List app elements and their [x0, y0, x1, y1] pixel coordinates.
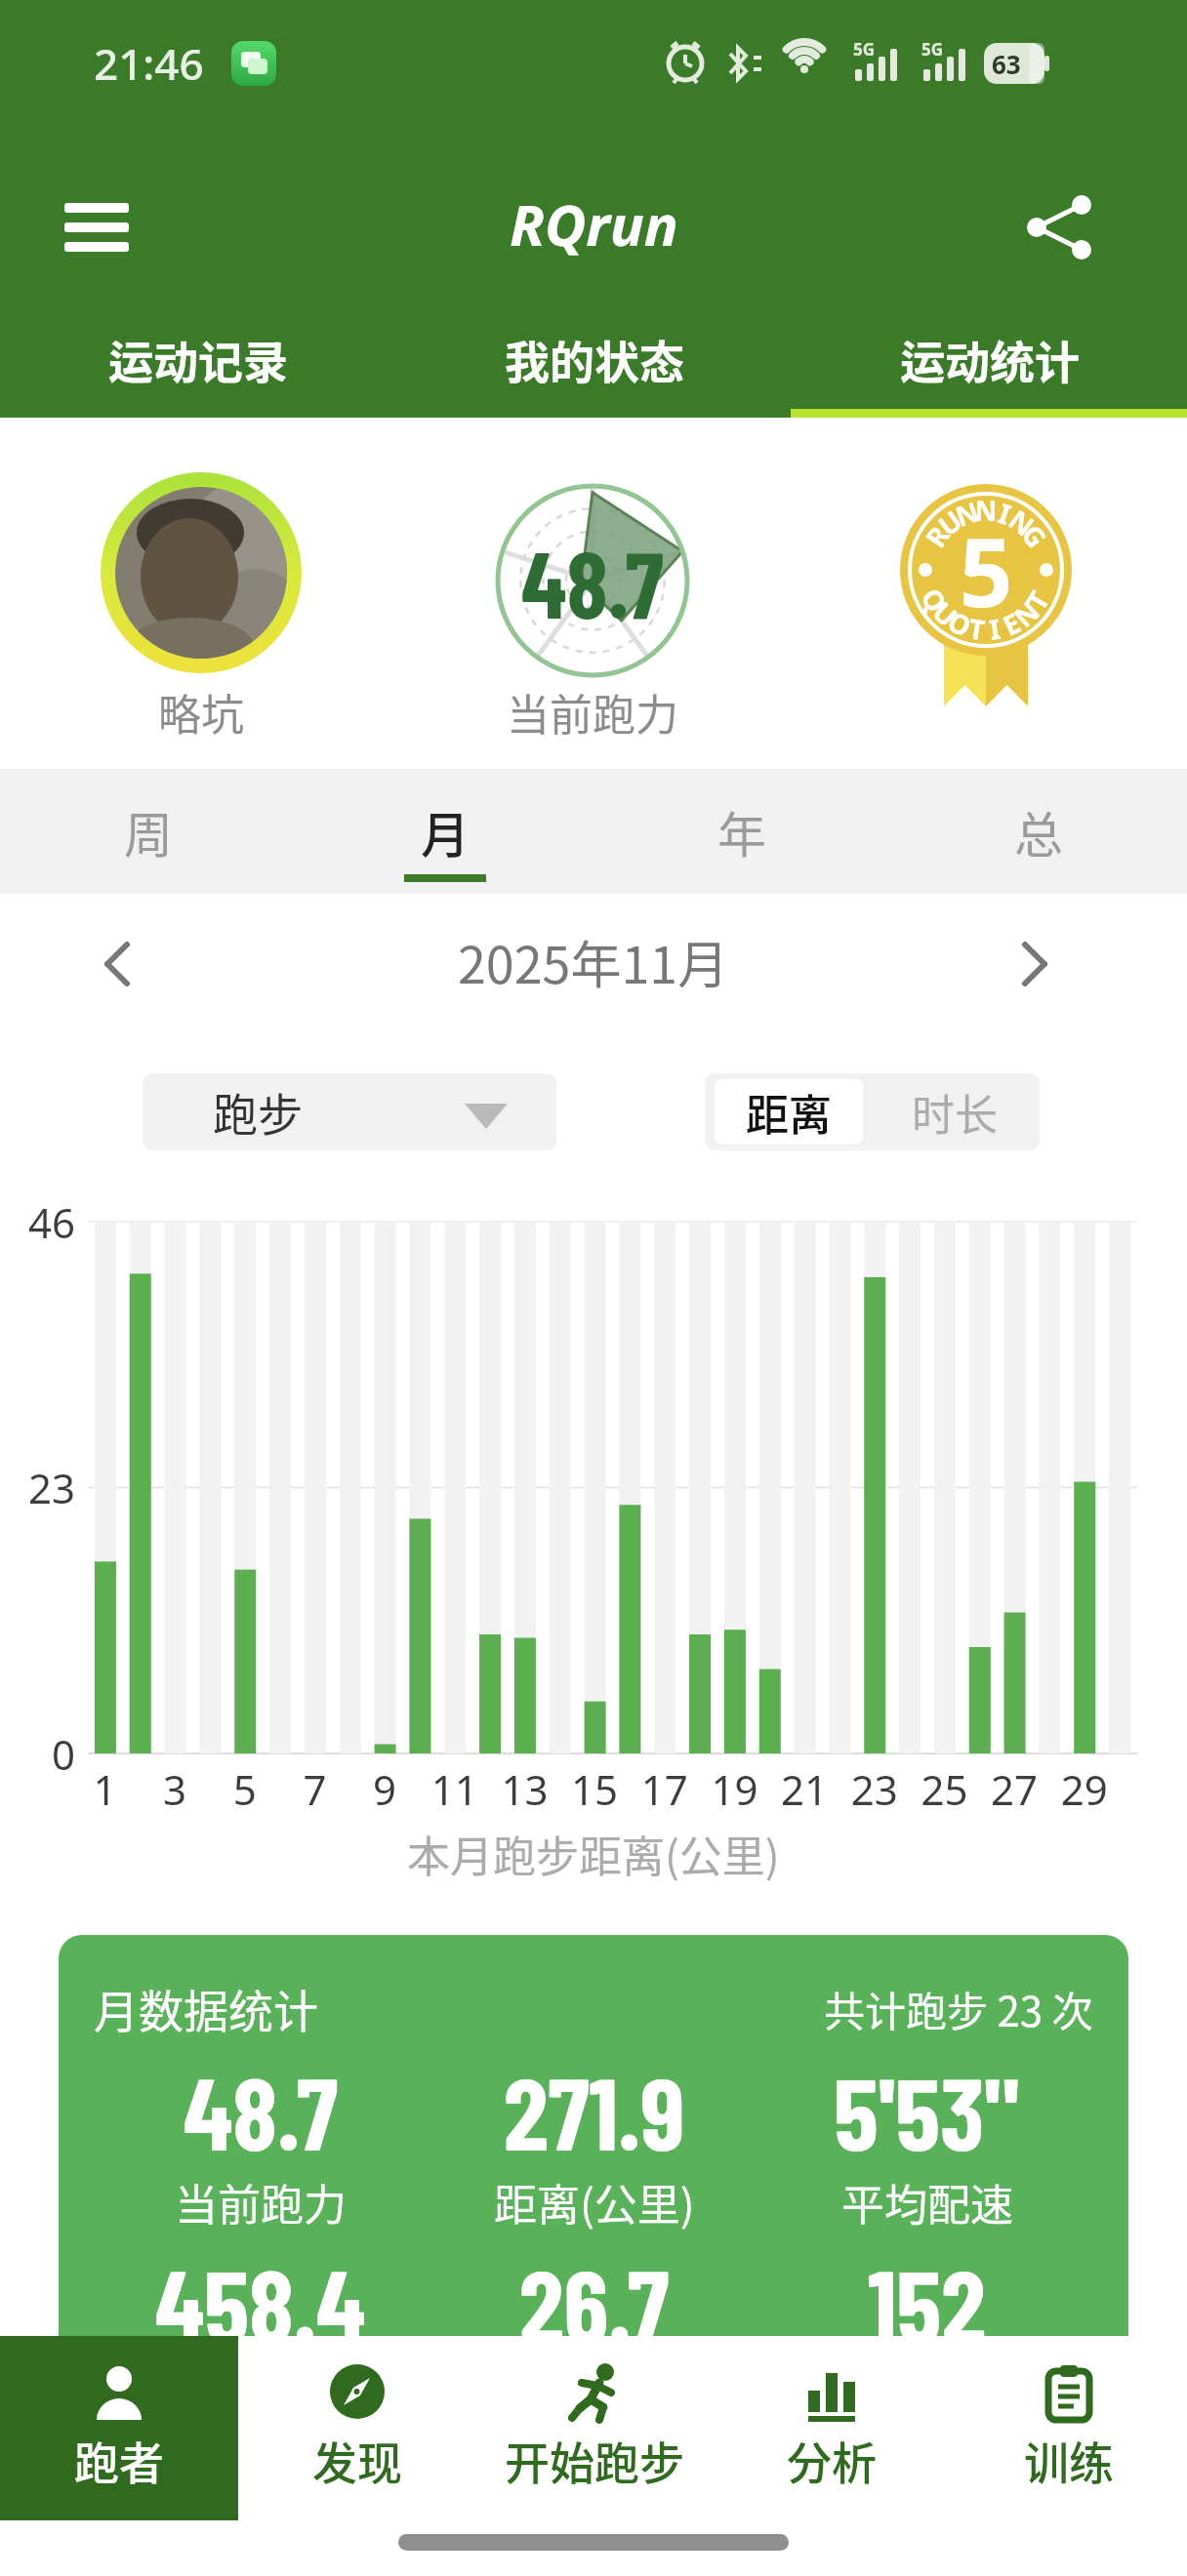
staticText: 分析 — [787, 2428, 877, 2493]
staticText: 271.9 — [504, 2049, 685, 2171]
staticText: 跑者 — [74, 2428, 164, 2493]
button[interactable]: 我的状态 — [396, 301, 792, 418]
button[interactable]: 年 — [593, 769, 890, 894]
button[interactable] — [43, 181, 150, 273]
button[interactable] — [1005, 181, 1113, 273]
staticText: 平均配速 — [841, 2171, 1013, 2234]
staticText: 训练 — [1024, 2428, 1114, 2493]
staticText: 当前跑力 — [175, 2171, 347, 2234]
staticText: 458.4 — [155, 2241, 366, 2363]
button[interactable]: 训练 — [950, 2336, 1187, 2520]
button[interactable]: 月 — [297, 769, 593, 894]
staticText: 5'53" — [834, 2049, 1020, 2171]
staticText: 距离 — [746, 1081, 832, 1144]
staticText: 开始跑步 — [505, 2428, 684, 2493]
button[interactable]: 跑步 — [143, 1073, 556, 1150]
staticText: 总 — [1014, 796, 1063, 866]
staticText: 年 — [717, 796, 766, 866]
staticText: 2025年11月 — [458, 925, 729, 998]
staticText: 运动统计 — [900, 327, 1080, 392]
staticText: 当前跑力 — [394, 681, 791, 744]
button[interactable]: 发现 — [238, 2336, 475, 2520]
button[interactable]: 运动统计 — [792, 301, 1187, 418]
button[interactable]: 运动记录 — [0, 301, 396, 418]
button[interactable]: 跑者 — [0, 2336, 238, 2520]
button[interactable] — [59, 917, 176, 1011]
staticText: 月数据统计 — [94, 1976, 318, 2041]
staticText: 152 — [868, 2241, 986, 2363]
staticText: 26.7 — [519, 2241, 670, 2363]
staticText: 跑步 — [213, 1079, 303, 1145]
staticText: 共计跑步 23 次 — [824, 1979, 1093, 2038]
staticText: 周 — [124, 796, 173, 866]
staticText: RQrun — [510, 185, 678, 262]
staticText: 距离(公里) — [494, 2171, 695, 2234]
staticText: 我的状态 — [505, 327, 684, 392]
button[interactable]: 分析 — [713, 2336, 950, 2520]
staticText: 21:46 — [94, 34, 204, 93]
staticText: 略坑 — [0, 681, 402, 744]
staticText: 48.7 — [184, 2049, 339, 2171]
button[interactable] — [976, 917, 1093, 1011]
staticText: 发现 — [312, 2428, 402, 2493]
button[interactable]: 距离 — [715, 1079, 863, 1145]
button[interactable]: 周 — [0, 769, 297, 894]
button[interactable]: 总 — [890, 769, 1187, 894]
staticText: 时长 — [912, 1081, 998, 1144]
staticText: 月 — [421, 796, 470, 866]
button[interactable]: 时长 — [880, 1079, 1029, 1145]
button[interactable]: 开始跑步 — [475, 2336, 713, 2520]
staticText: 运动记录 — [108, 327, 288, 392]
